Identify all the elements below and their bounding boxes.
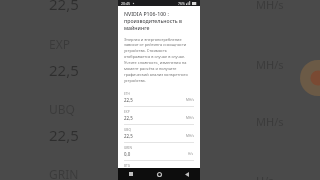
staticText: 0,0 (124, 151, 131, 157)
staticText: MH/s (256, 114, 284, 129)
staticText: H/s (256, 173, 274, 180)
button[interactable]: Home (154, 169, 164, 179)
button[interactable]: GRIN (124, 146, 194, 164)
staticText: 22,5 (49, 125, 79, 145)
staticText: UBQ (49, 101, 75, 117)
staticText: 22,5 (124, 133, 133, 139)
staticText: BTG (124, 164, 131, 168)
button[interactable]: BTG (124, 164, 194, 168)
staticText: 22,5 (49, 60, 79, 80)
staticText: GRIN (49, 166, 79, 180)
button[interactable]: Recent apps (126, 169, 136, 179)
staticText: MH/s (186, 134, 194, 138)
button[interactable]: UBQ (124, 128, 194, 146)
button[interactable]: Back (182, 169, 192, 179)
staticText: EXP (124, 110, 130, 114)
staticText: MH/s (186, 98, 194, 102)
staticText: 20:45 (121, 1, 130, 6)
button[interactable]: EXP (124, 110, 194, 128)
staticText: MH/s (186, 116, 194, 120)
staticText: GRIN (124, 146, 132, 150)
staticText: ETH (124, 92, 130, 96)
staticText: MH/s (256, 0, 284, 12)
staticText: H/s (188, 152, 194, 156)
staticText: MH/s (256, 57, 284, 72)
staticText: Энергия и энергопотребление зависят от р… (124, 37, 194, 84)
staticText: UBQ (124, 128, 131, 132)
button[interactable]: Add (300, 60, 320, 96)
staticText: NVIDIA P106-100 : производительность в м… (124, 10, 194, 31)
button[interactable]: ETH (124, 92, 194, 110)
staticText: 76% (178, 1, 185, 6)
staticText: EXP (49, 36, 70, 52)
staticText: 22,5 (49, 0, 79, 14)
staticText: 22,5 (124, 97, 133, 103)
staticText: 22,5 (124, 115, 133, 121)
